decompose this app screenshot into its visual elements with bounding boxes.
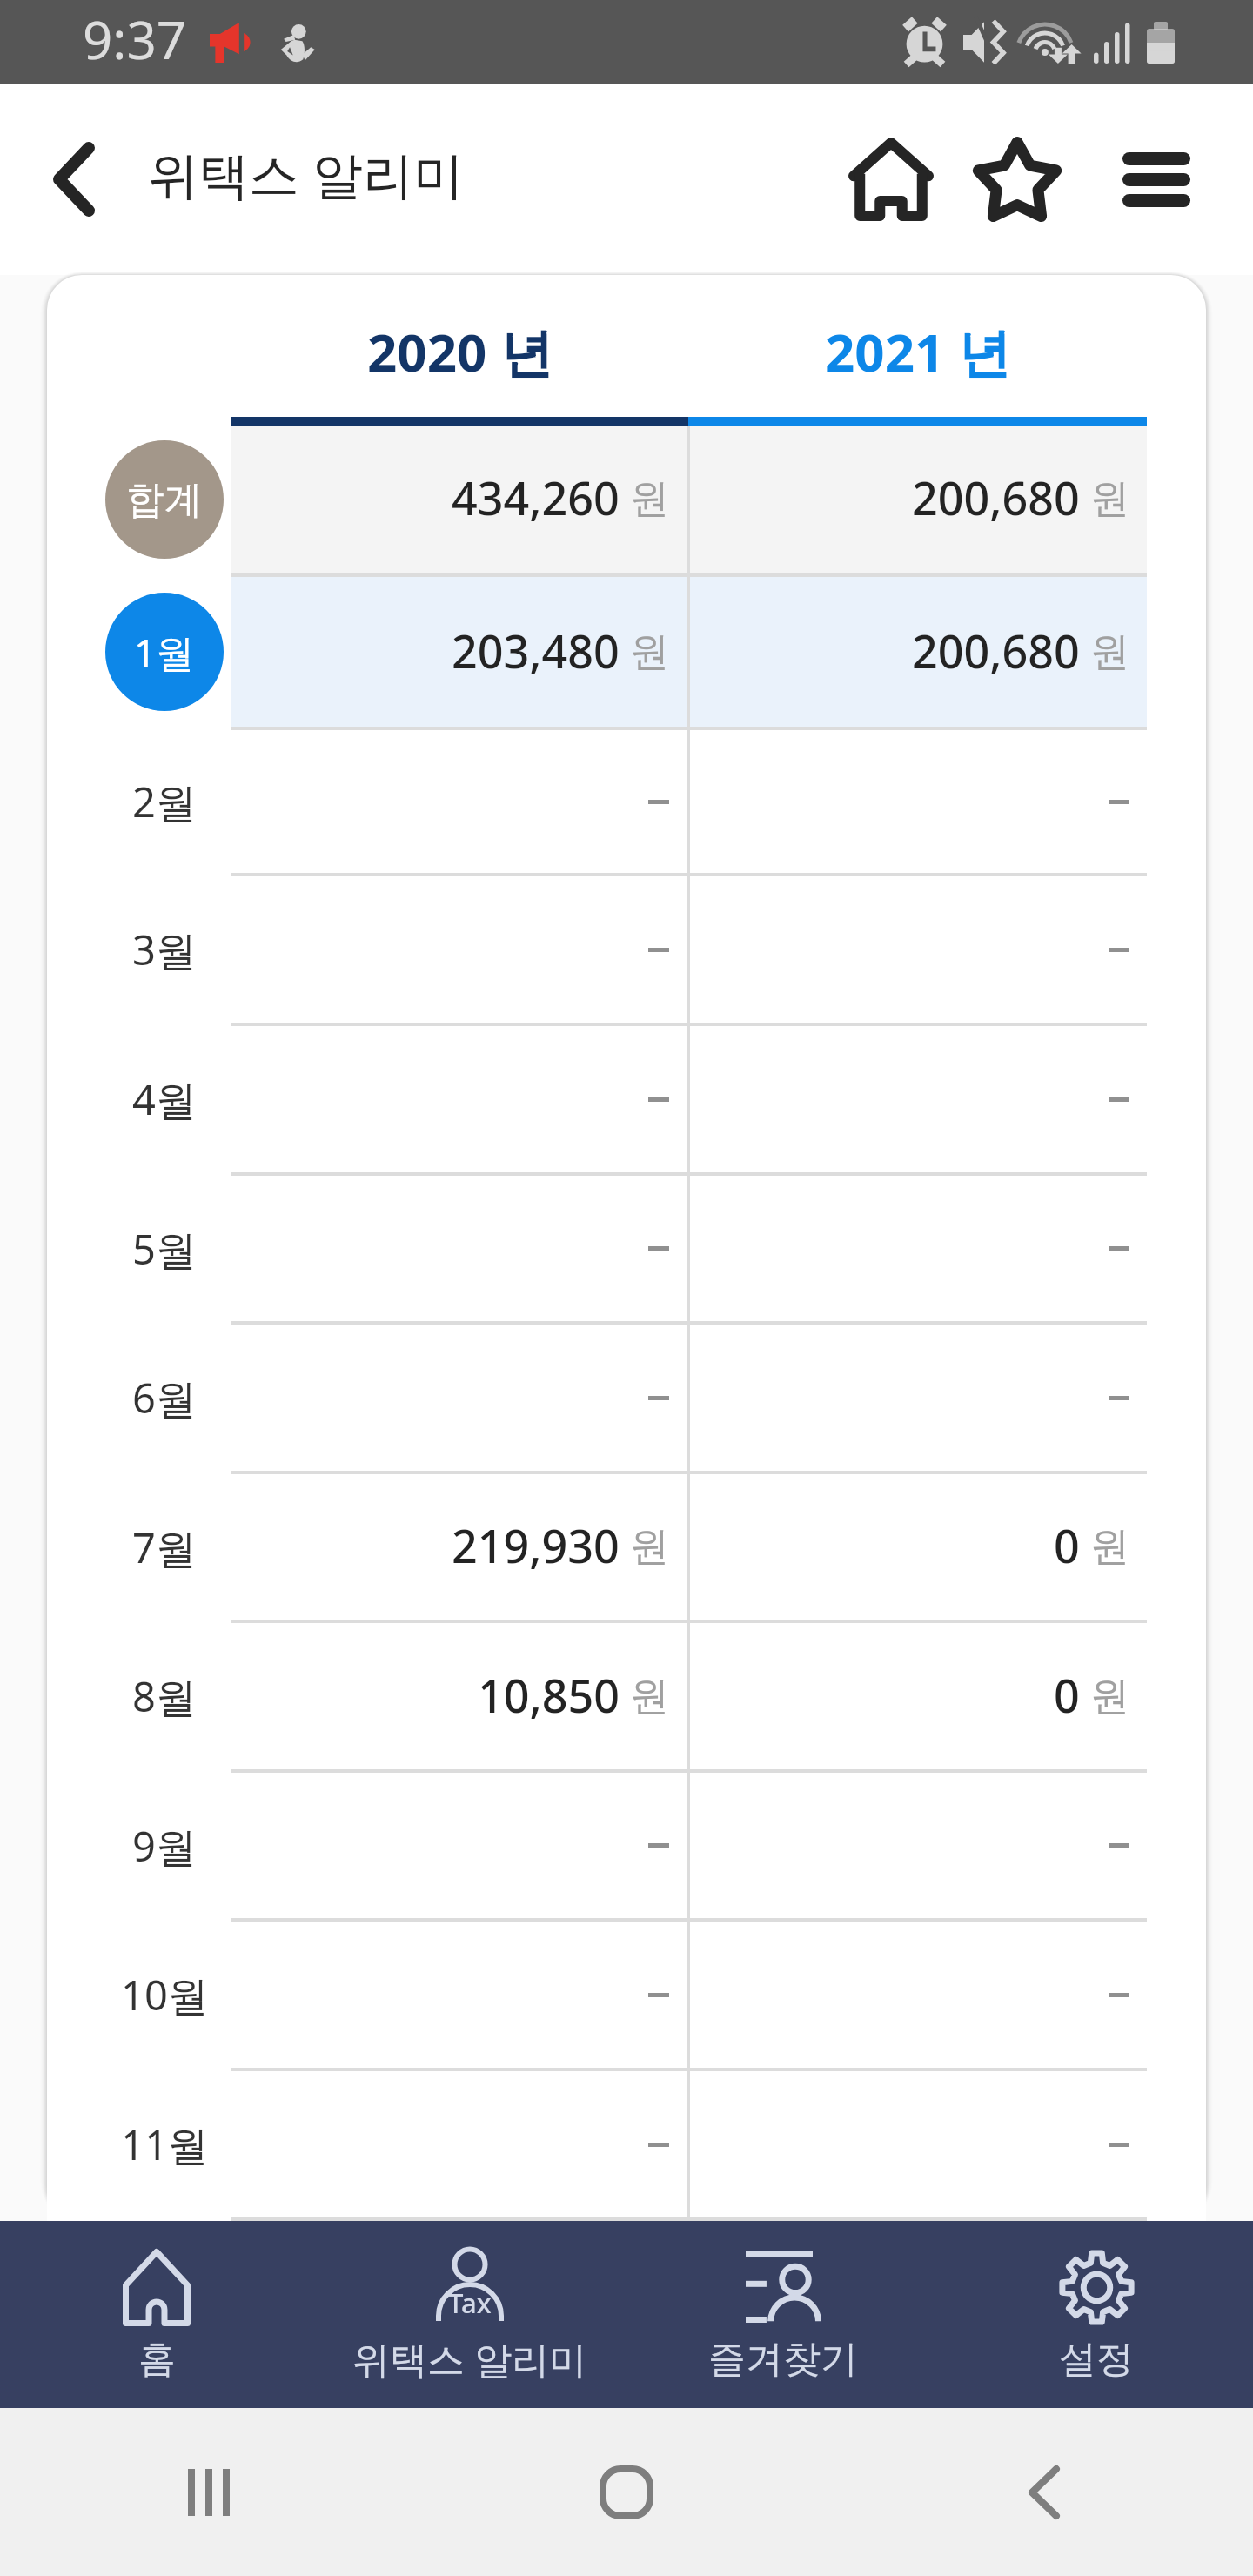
button[interactable]: 홈 <box>0 2221 313 2408</box>
staticText: 원 <box>1090 627 1129 677</box>
staticText: 219,930 <box>452 1514 620 1576</box>
staticText: 5월 <box>132 1221 197 1277</box>
staticText: 1월 <box>134 626 195 678</box>
button[interactable]: 3월 <box>47 876 1206 1026</box>
staticText: 홈 <box>138 2336 176 2383</box>
staticText: 200,680 <box>912 620 1080 681</box>
button[interactable]: 10월 <box>47 1922 1206 2071</box>
button[interactable]: 4월 <box>47 1026 1206 1176</box>
staticText: 3월 <box>132 922 197 977</box>
button[interactable]: 2021 년 <box>688 275 1147 417</box>
button[interactable]: 7월 <box>47 1474 1206 1623</box>
staticText: Tax <box>448 2284 492 2321</box>
staticText: 7월 <box>132 1519 197 1575</box>
staticText: 즐겨찾기 <box>708 2336 858 2383</box>
staticText: 원 <box>1090 1522 1129 1572</box>
staticText: 원 <box>1090 474 1129 524</box>
staticText: 11월 <box>121 2116 209 2172</box>
button[interactable]: 11월 <box>47 2071 1206 2221</box>
staticText: 2020 년 <box>367 316 553 387</box>
button[interactable]: 6월 <box>47 1325 1206 1474</box>
staticText: 위택스 알리미 <box>148 139 465 208</box>
staticText: 6월 <box>132 1370 197 1426</box>
staticText: 9월 <box>132 1818 197 1874</box>
button[interactable]: 9월 <box>47 1773 1206 1922</box>
button[interactable]: 2월 <box>47 730 1206 876</box>
staticText: 원 <box>630 1522 669 1572</box>
staticText: 0 <box>1054 1664 1080 1726</box>
button[interactable]: Tax <box>313 2221 626 2408</box>
button[interactable]: Home <box>418 2408 835 2576</box>
staticText: 원 <box>630 627 669 677</box>
staticText: 원 <box>1090 1672 1129 1721</box>
button[interactable]: 8월 <box>47 1623 1206 1773</box>
button[interactable]: Home <box>834 118 948 240</box>
button[interactable]: Favorite <box>948 118 1087 240</box>
staticText: 203,480 <box>452 620 620 681</box>
button[interactable]: 합계 <box>47 426 1206 577</box>
staticText: 2021 년 <box>825 316 1010 387</box>
staticText: 9:37 <box>83 3 187 75</box>
staticText: 2월 <box>132 774 197 829</box>
staticText: 4월 <box>132 1071 197 1127</box>
button[interactable]: 설정 <box>940 2221 1253 2408</box>
button[interactable]: 1월 <box>47 577 1206 730</box>
staticText: 10월 <box>121 1967 209 2023</box>
staticText: 원 <box>630 1672 669 1721</box>
staticText: 434,260 <box>452 466 620 528</box>
staticText: 합계 <box>126 476 203 524</box>
button[interactable]: Back <box>835 2408 1253 2576</box>
staticText: 200,680 <box>912 466 1080 528</box>
staticText: 위택스 알리미 <box>352 2333 587 2385</box>
staticText: 10,850 <box>478 1664 620 1726</box>
staticText: 원 <box>630 474 669 524</box>
button[interactable]: 2020 년 <box>231 275 688 417</box>
staticText: 0 <box>1054 1514 1080 1576</box>
button[interactable]: 5월 <box>47 1176 1206 1325</box>
button[interactable]: Back <box>31 137 117 222</box>
staticText: 설정 <box>1059 2336 1134 2383</box>
button[interactable]: Recents <box>0 2408 418 2576</box>
button[interactable]: 즐겨찾기 <box>626 2221 940 2408</box>
button[interactable]: Menu <box>1087 118 1226 240</box>
staticText: 8월 <box>132 1668 197 1724</box>
